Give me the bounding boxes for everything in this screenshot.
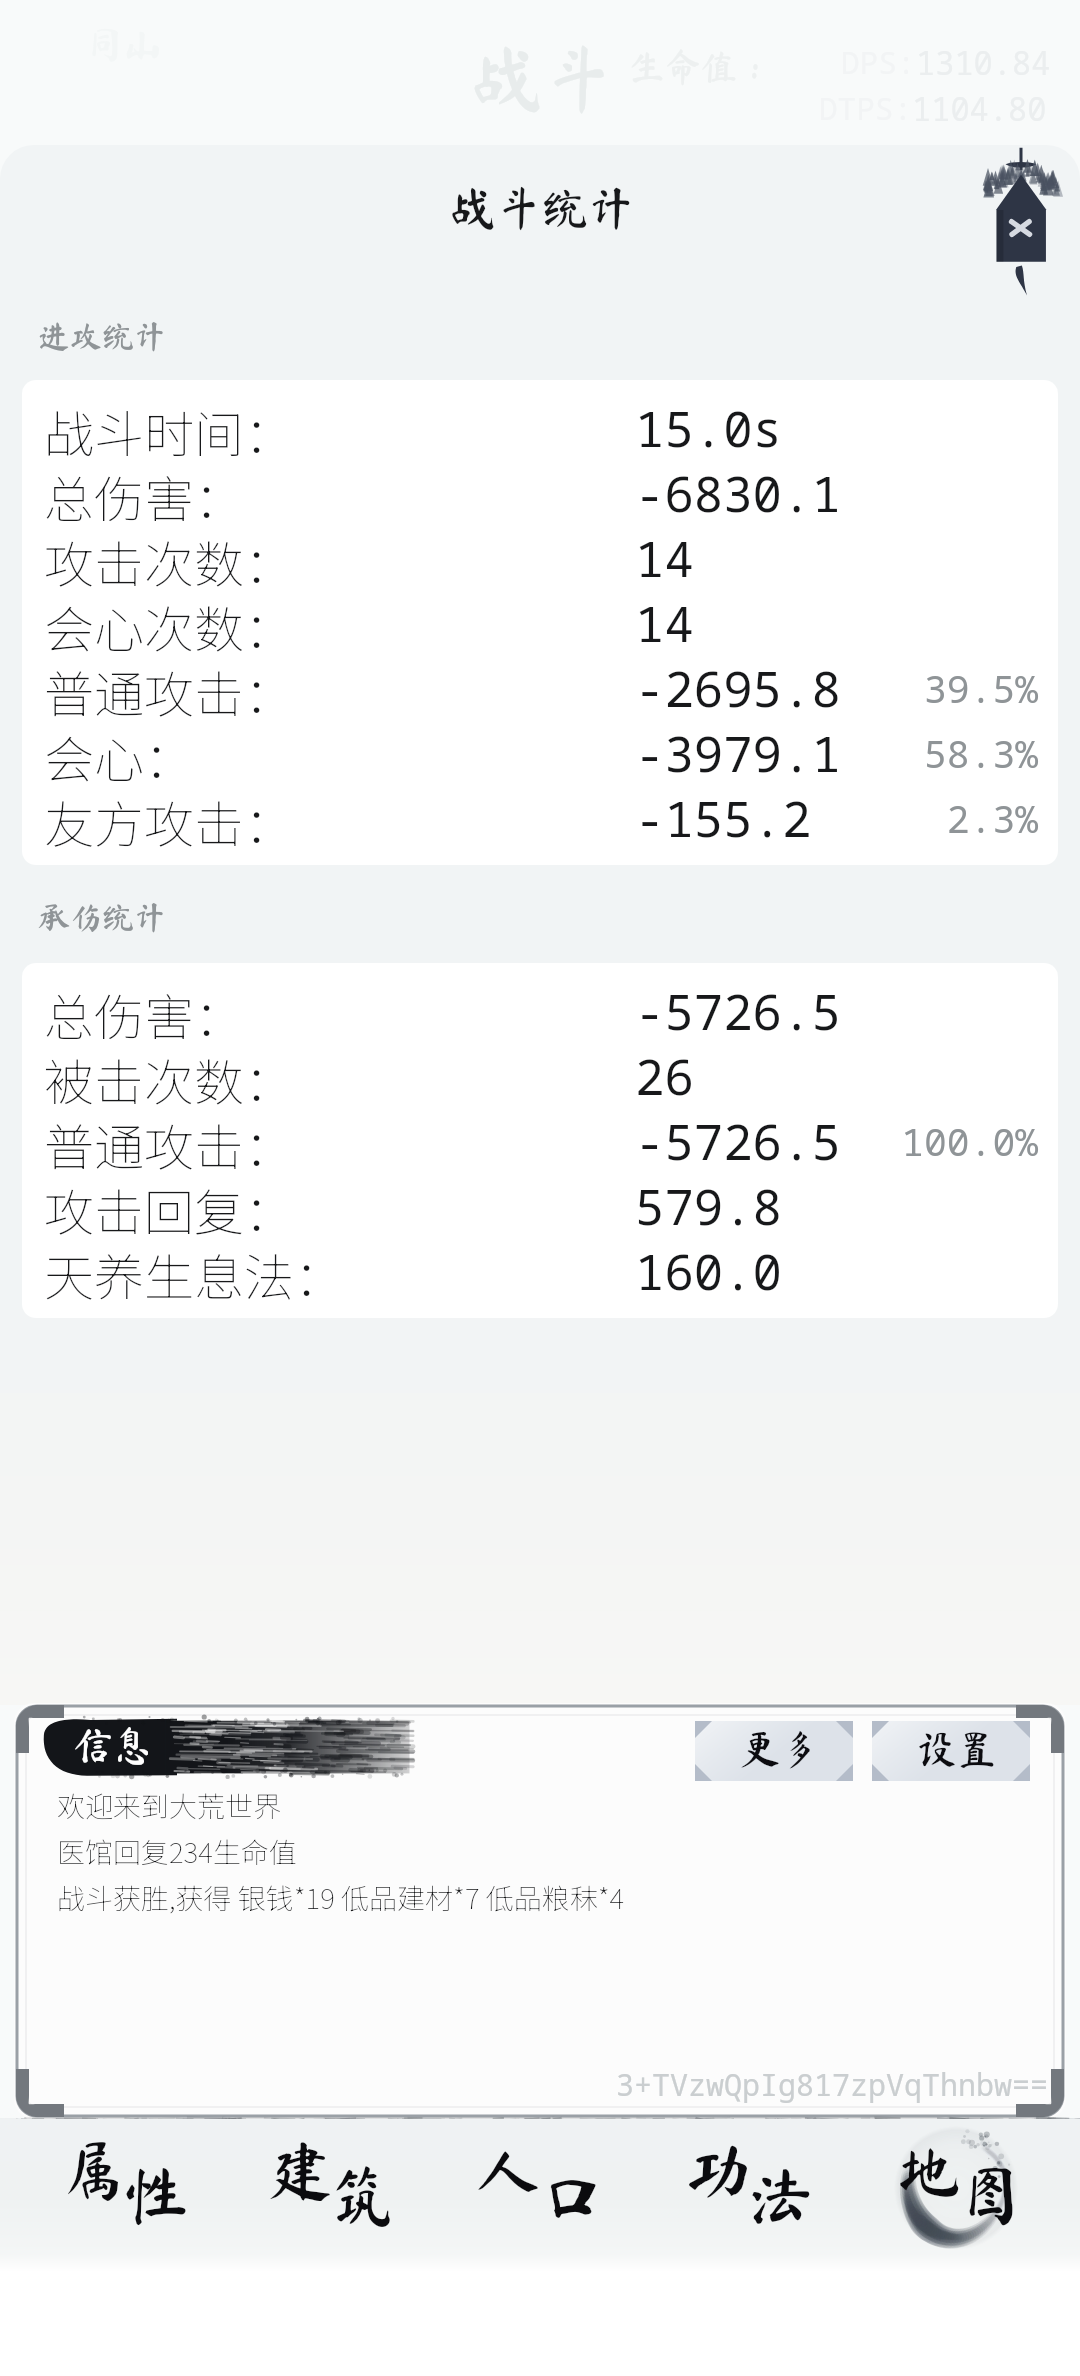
staticText: 160.0 (635, 1238, 783, 1303)
staticText: 筑 (330, 2162, 396, 2228)
staticText: -5726.5 (635, 978, 841, 1043)
button[interactable]: 被击次数： (22, 1043, 1058, 1108)
button[interactable]: Close (978, 147, 1064, 297)
staticText: -5726.5 (635, 1108, 841, 1173)
button[interactable]: 属 (25, 2119, 221, 2272)
staticText: 总伤害： (44, 978, 244, 1043)
staticText: 属 (60, 2137, 126, 2203)
staticText: 被击次数： (44, 1043, 294, 1108)
staticText: 建 (267, 2137, 333, 2203)
button[interactable]: 建 (232, 2119, 428, 2272)
staticText: 进攻统计 (38, 320, 167, 352)
button[interactable]: 普通攻击： (22, 655, 1058, 720)
staticText: -3979.1 (635, 720, 841, 785)
staticText: 口 (538, 2162, 604, 2228)
staticText: 会心次数： (44, 590, 294, 655)
staticText: 战斗获胜,获得 银钱*19 低品建材*7 低品粮秣*4 (57, 1877, 625, 1918)
staticText: 功 (685, 2137, 751, 2203)
staticText: 更多 (740, 1729, 820, 1769)
staticText: 1104.80 (912, 87, 1047, 131)
staticText: 天养生息法： (44, 1238, 344, 1303)
button[interactable]: 更多 (695, 1721, 853, 1781)
button[interactable]: 战斗时间： (22, 395, 1058, 460)
staticText: 欢迎来到大荒世界 (57, 1785, 282, 1826)
button[interactable]: 功 (650, 2119, 846, 2272)
button[interactable]: 地 (860, 2119, 1056, 2272)
staticText: 友方攻击： (44, 785, 294, 850)
staticText: 2.3% (838, 792, 1038, 844)
staticText: 承伤统计 (38, 901, 167, 933)
staticText: 信息 (73, 1725, 153, 1765)
button[interactable]: 设置 (872, 1721, 1030, 1781)
staticText: 15.0s (635, 395, 783, 460)
button[interactable]: 天养生息法： (22, 1238, 1058, 1303)
button[interactable]: 普通攻击： (22, 1108, 1058, 1173)
staticText: 3+TVzwQpIg817zpVqThnbw== (616, 2064, 1048, 2105)
staticText: -6830.1 (635, 460, 841, 525)
staticText: 58.3% (838, 727, 1038, 779)
staticText: -155.2 (635, 785, 812, 850)
staticText: 攻击回复： (44, 1173, 294, 1238)
staticText: 图 (958, 2162, 1024, 2228)
button[interactable]: 总伤害： (22, 978, 1058, 1043)
staticText: 14 (635, 590, 694, 655)
staticText: 普通攻击： (44, 1108, 294, 1173)
staticText: 地 (895, 2137, 961, 2203)
staticText: 攻击次数： (44, 525, 294, 590)
button[interactable]: 友方攻击： (22, 785, 1058, 850)
staticText: 14 (635, 525, 694, 590)
staticText: 战斗统计 (450, 185, 634, 231)
staticText: 总伤害： (44, 460, 244, 525)
staticText: 人 (475, 2137, 541, 2203)
button[interactable]: 会心次数： (22, 590, 1058, 655)
staticText: 39.5% (838, 662, 1038, 714)
staticText: 26 (635, 1043, 694, 1108)
staticText: 579.8 (635, 1173, 783, 1238)
staticText: 生命值： (629, 48, 774, 84)
staticText: 医馆回复234生命值 (57, 1831, 297, 1872)
button[interactable]: 会心： (22, 720, 1058, 785)
staticText: 普通攻击： (44, 655, 294, 720)
staticText: 战斗时间： (44, 395, 294, 460)
staticText: 战斗 (471, 42, 616, 114)
staticText: 会心： (44, 720, 194, 785)
staticText: 性 (123, 2162, 189, 2228)
staticText: 1310.84 (916, 41, 1051, 85)
button[interactable]: 攻击次数： (22, 525, 1058, 590)
staticText: 设置 (917, 1729, 997, 1769)
button[interactable]: 攻击回复： (22, 1173, 1058, 1238)
staticText: 100.0% (838, 1115, 1038, 1167)
staticText: 法 (748, 2162, 814, 2228)
button[interactable]: 人 (440, 2119, 636, 2272)
staticText: -2695.8 (635, 655, 841, 720)
button[interactable]: 总伤害： (22, 460, 1058, 525)
